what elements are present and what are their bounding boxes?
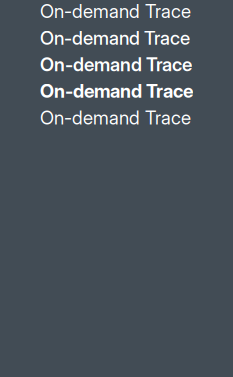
staticText: On-demand Trace — [40, 27, 190, 49]
staticText: On-demand Trace — [40, 0, 191, 23]
staticText: On-demand Trace — [40, 53, 192, 76]
staticText: On-demand Trace — [40, 106, 191, 129]
staticText: On-demand Trace — [40, 80, 193, 102]
